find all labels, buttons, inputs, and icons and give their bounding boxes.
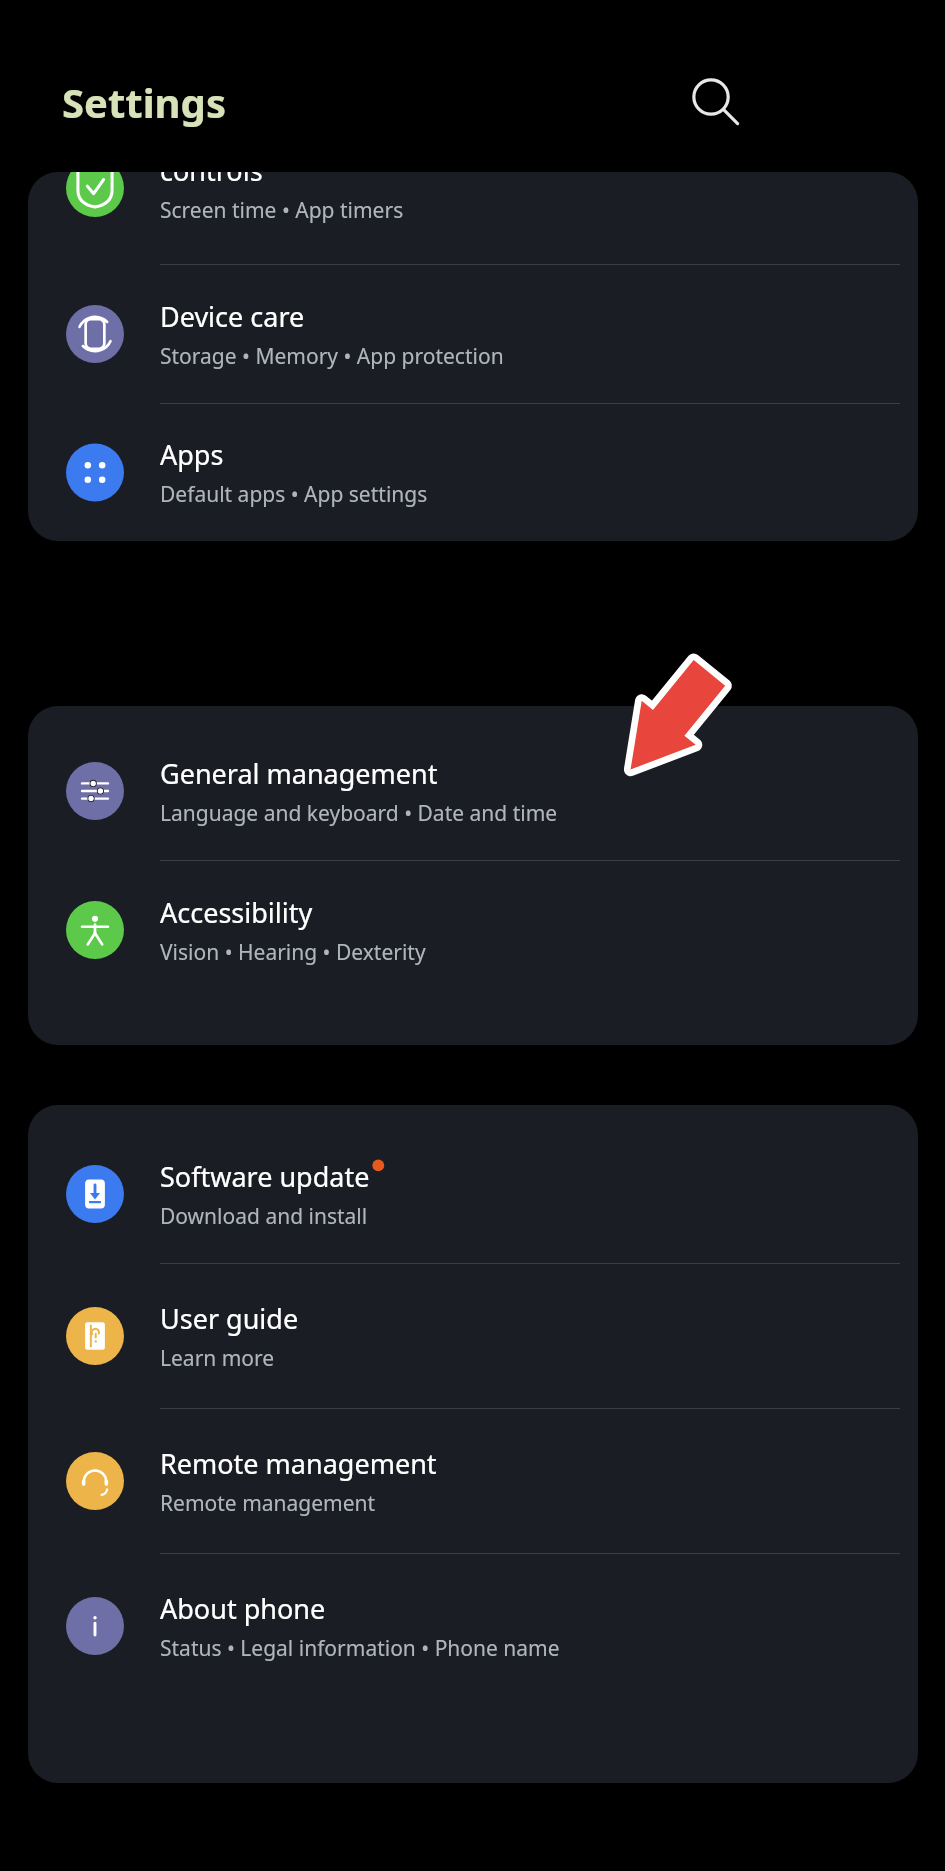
button[interactable]: Apps: [28, 404, 918, 541]
staticText: Download and install: [160, 1202, 368, 1231]
button[interactable]: Remote management: [28, 1409, 918, 1553]
staticText: Remote management: [160, 1445, 437, 1482]
button[interactable]: Software update: [28, 1125, 918, 1263]
staticText: Device care: [160, 298, 305, 335]
button[interactable]: controls: [28, 172, 918, 264]
staticText: Accessibility: [160, 894, 313, 931]
button[interactable]: General management: [28, 722, 918, 860]
button[interactable]: Device care: [28, 265, 918, 403]
staticText: Software update: [160, 1158, 370, 1195]
staticText: About phone: [160, 1590, 326, 1627]
staticText: Status • Legal information • Phone name: [160, 1634, 560, 1663]
staticText: Screen time • App timers: [160, 196, 404, 225]
button[interactable]: User guide: [28, 1264, 918, 1408]
staticText: Remote management: [160, 1489, 376, 1518]
button[interactable]: Accessibility: [28, 861, 918, 999]
staticText: Vision • Hearing • Dexterity: [160, 938, 426, 967]
staticText: Language and keyboard • Date and time: [160, 799, 558, 828]
staticText: Apps: [160, 436, 224, 473]
staticText: Storage • Memory • App protection: [160, 342, 504, 371]
button[interactable]: About phone: [28, 1554, 918, 1698]
staticText: Default apps • App settings: [160, 480, 428, 509]
staticText: General management: [160, 755, 438, 792]
staticText: User guide: [160, 1300, 299, 1337]
staticText: Learn more: [160, 1344, 275, 1373]
staticText: Settings: [62, 75, 226, 129]
staticText: controls: [160, 172, 263, 189]
button[interactable]: Search: [680, 68, 746, 134]
